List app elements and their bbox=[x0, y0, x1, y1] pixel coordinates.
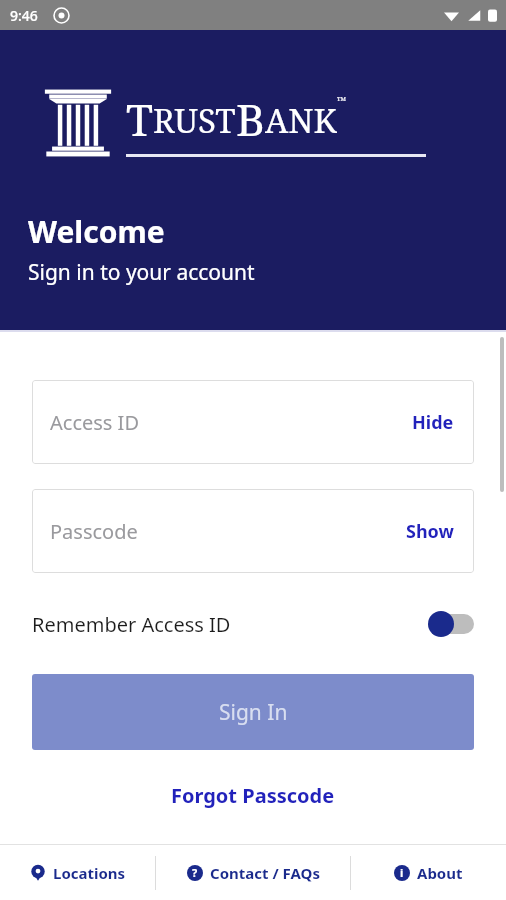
staticText: i bbox=[400, 865, 404, 880]
staticText: Hide bbox=[412, 410, 454, 435]
staticText: About bbox=[417, 863, 463, 883]
staticText: B bbox=[236, 89, 265, 149]
button[interactable]: Locations bbox=[0, 845, 155, 900]
button[interactable]: Show bbox=[386, 489, 474, 573]
other: Locations bbox=[30, 865, 46, 881]
other: About bbox=[394, 865, 410, 881]
button[interactable]: About bbox=[351, 845, 506, 900]
staticText: Locations bbox=[53, 863, 126, 883]
button[interactable]: Remember Access ID bbox=[32, 601, 474, 647]
staticText: Welcome bbox=[28, 211, 165, 252]
staticText: Passcode bbox=[50, 518, 138, 545]
staticText: ™ bbox=[337, 93, 347, 108]
staticText: Remember Access ID bbox=[32, 611, 231, 638]
button[interactable]: Passcode bbox=[32, 489, 474, 573]
staticText: Sign in to your account bbox=[28, 258, 255, 287]
button[interactable]: Hide bbox=[392, 380, 474, 464]
button[interactable]: Sign In bbox=[32, 674, 474, 750]
staticText: ANK bbox=[265, 98, 337, 143]
staticText: Forgot Passcode bbox=[171, 782, 335, 809]
staticText: RUST bbox=[153, 98, 236, 143]
button[interactable]: Forgot Passcode bbox=[0, 782, 506, 809]
button[interactable]: Contact and FAQs bbox=[156, 845, 350, 900]
button[interactable]: Access ID bbox=[32, 380, 474, 464]
staticText: T bbox=[126, 89, 153, 149]
staticText: Contact / FAQs bbox=[210, 863, 320, 883]
staticText: Show bbox=[406, 519, 454, 544]
other: Contact and FAQs bbox=[187, 865, 203, 881]
staticText: Access ID bbox=[50, 409, 139, 436]
staticText: ? bbox=[192, 865, 198, 880]
staticText: 9:46 bbox=[10, 6, 38, 25]
staticText: Sign In bbox=[219, 698, 288, 727]
